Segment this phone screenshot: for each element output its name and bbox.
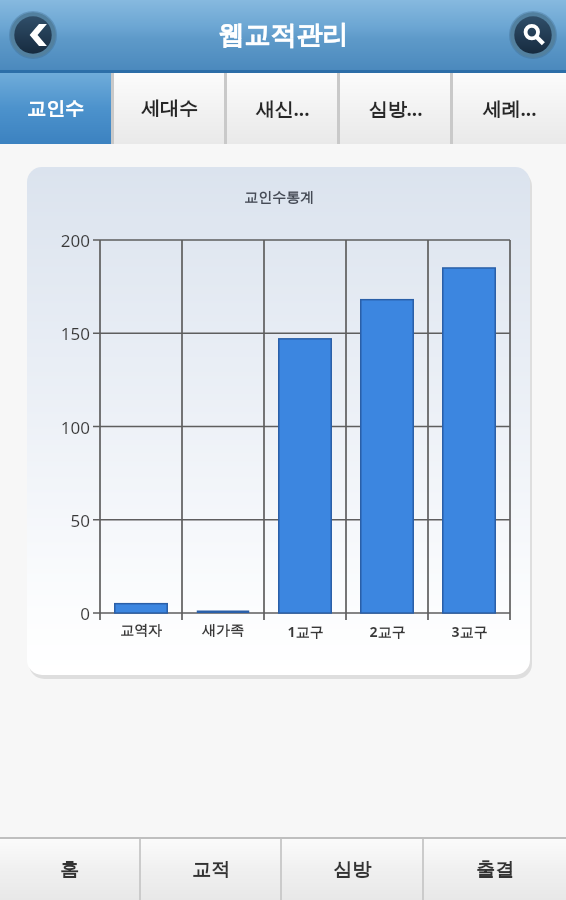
button[interactable]: 세례...: [453, 73, 566, 144]
button[interactable]: 교인수: [0, 73, 111, 144]
staticText: 새가족: [202, 622, 244, 640]
staticText: 심방: [333, 858, 371, 882]
button[interactable]: 세대수: [114, 73, 224, 144]
staticText: 200: [27, 229, 90, 252]
button[interactable]: 출결: [424, 839, 566, 900]
staticText: 세례...: [482, 96, 537, 122]
staticText: 심방...: [368, 96, 423, 122]
staticText: 3교구: [451, 622, 488, 641]
staticText: 100: [27, 416, 90, 439]
staticText: 출결: [476, 858, 514, 882]
staticText: 교적: [192, 858, 230, 882]
staticText: 50: [27, 509, 90, 532]
staticText: 새신...: [255, 96, 310, 122]
button[interactable]: 교적: [141, 839, 280, 900]
button[interactable]: 홈: [0, 839, 139, 900]
button[interactable]: 새신...: [227, 73, 337, 144]
button[interactable]: 심방...: [340, 73, 450, 144]
staticText: 150: [27, 322, 90, 345]
staticText: 2교구: [369, 622, 406, 641]
staticText: 교인수: [27, 97, 84, 121]
button[interactable]: Back: [9, 11, 57, 59]
staticText: 교역자: [120, 622, 162, 640]
staticText: 홈: [60, 858, 79, 882]
staticText: 1교구: [287, 622, 324, 641]
staticText: 0: [27, 602, 90, 625]
staticText: 세대수: [141, 97, 198, 121]
staticText: 교인수통계: [244, 189, 314, 207]
button[interactable]: 심방: [282, 839, 422, 900]
button[interactable]: Search: [509, 11, 557, 59]
staticText: 웹교적관리: [218, 19, 348, 52]
